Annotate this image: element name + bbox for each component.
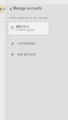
staticText: mickhendrix@gmail (15, 29, 35, 31)
button[interactable]: Add account (8, 49, 48, 60)
staticText: Link inboxes (17, 42, 35, 45)
staticText: Manage accounts (13, 6, 42, 10)
staticText: ng a (0, 7, 4, 11)
staticText: Add account (17, 53, 36, 56)
button[interactable]: Link inboxes (8, 38, 48, 49)
staticText: Mercurdea (15, 25, 28, 28)
button[interactable]: Back (9, 6, 13, 11)
button[interactable]: Mercurdea (8, 22, 49, 35)
staticText: Select an account to edit settings (9, 16, 48, 19)
